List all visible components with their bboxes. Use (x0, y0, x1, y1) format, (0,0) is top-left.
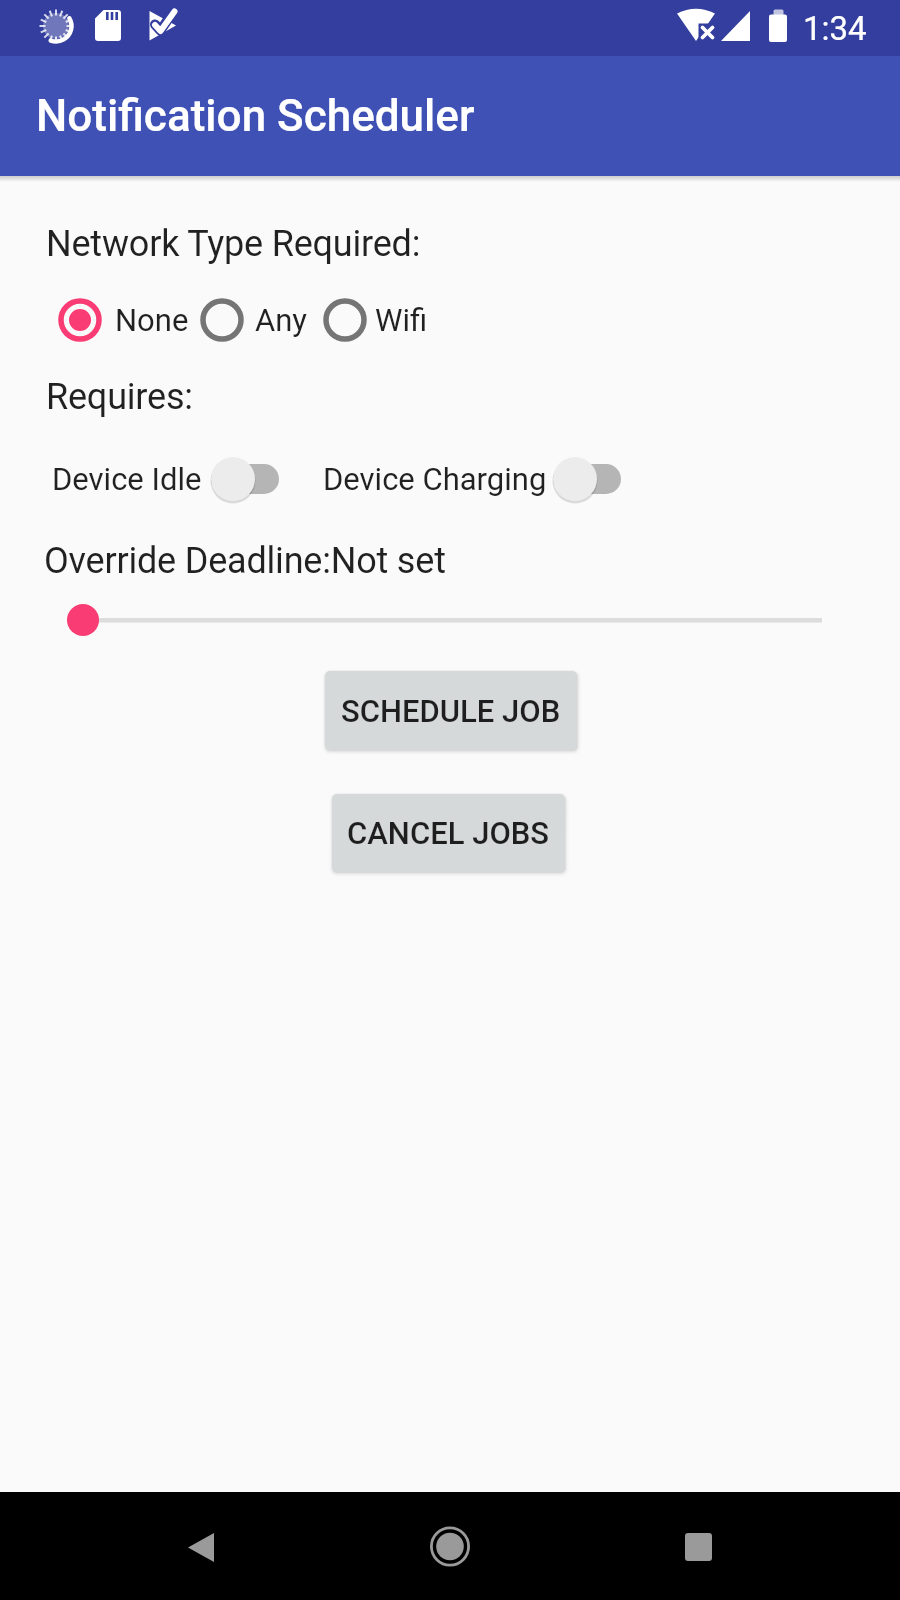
button[interactable] (668, 1516, 728, 1576)
button[interactable]: Device Charging (323, 455, 621, 503)
button[interactable]: CANCEL JOBS (332, 794, 565, 872)
staticText: Notification Scheduler (36, 90, 475, 142)
button[interactable] (173, 1516, 233, 1576)
staticText: Device Charging (323, 461, 547, 497)
button[interactable]: SCHEDULE JOB (325, 671, 577, 750)
button[interactable]: None (58, 296, 189, 344)
button[interactable] (55, 592, 835, 648)
button[interactable]: Wifi (323, 296, 428, 344)
staticText: Wifi (375, 302, 428, 338)
button[interactable] (420, 1516, 480, 1576)
staticText: Any (255, 302, 308, 338)
staticText: CANCEL JOBS (347, 815, 550, 851)
staticText: Requires: (46, 376, 193, 418)
button[interactable]: Device Idle (52, 455, 279, 503)
staticText: SCHEDULE JOB (341, 693, 561, 729)
staticText: Network Type Required: (46, 223, 421, 265)
button[interactable]: Any (200, 296, 308, 344)
staticText: Override Deadline:Not set (44, 540, 446, 582)
staticText: None (115, 302, 189, 338)
staticText: Device Idle (52, 461, 202, 497)
staticText: 1:34 (803, 9, 867, 48)
